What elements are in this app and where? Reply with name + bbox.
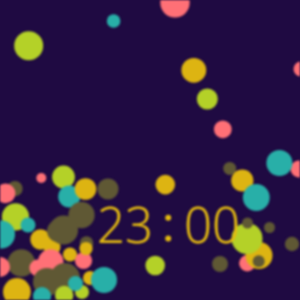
staticText: 23 — [97, 191, 153, 258]
staticText: 00 — [184, 191, 240, 258]
